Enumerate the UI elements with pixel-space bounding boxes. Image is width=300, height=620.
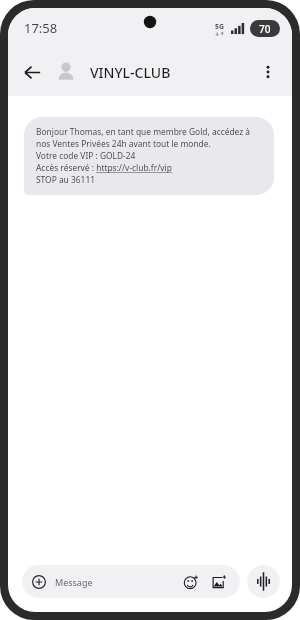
button[interactable]: Message xyxy=(22,565,240,598)
button[interactable]: Back xyxy=(14,54,50,90)
button[interactable]: Voice message xyxy=(247,565,280,598)
button[interactable]: Bonjour Thomas, en tant que membre Gold,… xyxy=(24,117,274,195)
staticText: VINYL-CLUB xyxy=(90,63,171,82)
button[interactable]: VINYL-CLUB xyxy=(90,63,250,82)
button[interactable]: Add image xyxy=(208,571,230,593)
staticText: Bonjour Thomas, en tant que membre Gold,… xyxy=(36,126,262,186)
staticText: 70 xyxy=(259,22,271,36)
staticText: Message xyxy=(55,576,180,588)
staticText: 17:58 xyxy=(24,19,58,37)
button[interactable]: Emoji xyxy=(180,571,202,593)
button[interactable]: More options xyxy=(250,54,286,90)
staticText: 5G xyxy=(215,22,225,32)
